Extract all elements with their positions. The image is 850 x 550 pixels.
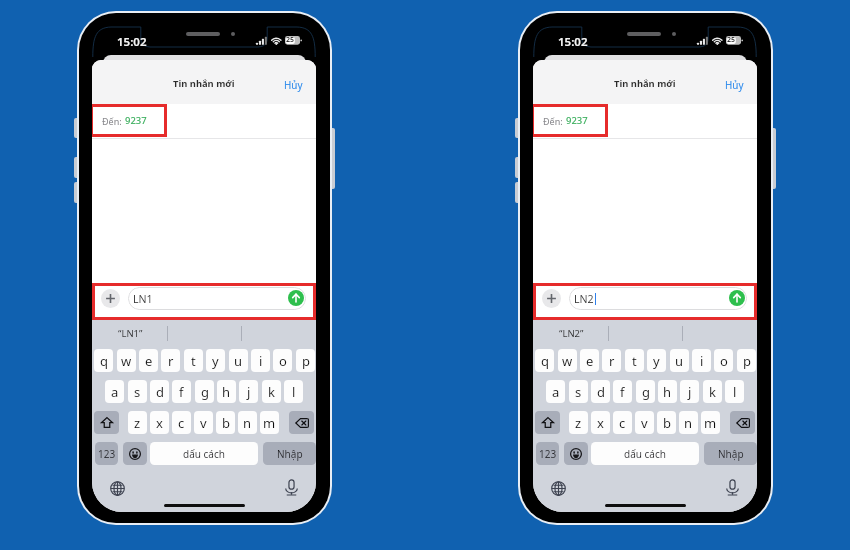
button[interactable]: h (217, 380, 236, 403)
button[interactable]: Shift (535, 411, 560, 434)
button[interactable]: LN2 (569, 287, 747, 310)
button[interactable]: b (657, 411, 676, 434)
button[interactable]: f (172, 380, 191, 403)
button[interactable]: w (117, 349, 136, 372)
staticText: c (178, 414, 185, 432)
button[interactable]: a (105, 380, 124, 403)
staticText: o (279, 352, 287, 370)
button[interactable]: Switch keyboard (110, 481, 125, 496)
button[interactable]: Nhập (263, 442, 316, 465)
button[interactable]: z (128, 411, 147, 434)
button[interactable]: Đến: (92, 104, 316, 139)
button[interactable]: Dictation (724, 479, 741, 496)
button[interactable]: s (569, 380, 588, 403)
button[interactable]: k (262, 380, 281, 403)
button[interactable]: a (546, 380, 565, 403)
button[interactable]: q (94, 349, 113, 372)
button[interactable]: g (195, 380, 214, 403)
staticText: h (222, 383, 231, 401)
button[interactable]: Send (729, 290, 745, 306)
staticText: m (704, 414, 717, 432)
button[interactable]: l (284, 380, 303, 403)
staticText: dấu cách (183, 447, 225, 461)
staticText: o (720, 352, 728, 370)
button[interactable]: y (647, 349, 666, 372)
button[interactable]: u (229, 349, 248, 372)
button[interactable]: i (251, 349, 270, 372)
staticText: “LN1” (118, 327, 143, 340)
button[interactable]: 123 (95, 442, 118, 465)
button[interactable]: f (613, 380, 632, 403)
button[interactable]: c (613, 411, 632, 434)
button[interactable]: dấu cách (591, 442, 699, 465)
button[interactable]: Add attachment (542, 289, 561, 308)
button[interactable]: e (139, 349, 158, 372)
button[interactable]: n (238, 411, 257, 434)
button[interactable]: i (692, 349, 711, 372)
button[interactable]: Backspace (289, 411, 314, 434)
button[interactable]: k (703, 380, 722, 403)
staticText: Tin nhắn mới (173, 77, 235, 90)
button[interactable]: j (239, 380, 258, 403)
button[interactable]: j (680, 380, 699, 403)
button[interactable]: b (216, 411, 235, 434)
button[interactable]: Nhập (704, 442, 757, 465)
button[interactable]: e (580, 349, 599, 372)
button[interactable]: d (591, 380, 610, 403)
button[interactable]: Backspace (730, 411, 755, 434)
button[interactable]: dấu cách (150, 442, 258, 465)
button[interactable]: r (602, 349, 621, 372)
staticText: 9237 (125, 114, 147, 127)
staticText: r (168, 352, 174, 370)
button[interactable]: p (737, 349, 756, 372)
button[interactable]: z (569, 411, 588, 434)
button[interactable]: v (194, 411, 213, 434)
button[interactable]: y (206, 349, 225, 372)
button[interactable]: x (150, 411, 169, 434)
staticText: w (562, 352, 573, 370)
staticText: c (619, 414, 626, 432)
button[interactable]: o (273, 349, 292, 372)
button[interactable]: o (714, 349, 733, 372)
staticText: n (243, 414, 252, 432)
button[interactable]: n (679, 411, 698, 434)
button[interactable]: Emoji (123, 442, 147, 465)
button[interactable]: Add attachment (101, 289, 120, 308)
button[interactable]: Hủy (725, 78, 744, 91)
button[interactable]: LN1 (128, 287, 306, 310)
button[interactable]: u (670, 349, 689, 372)
button[interactable]: g (636, 380, 655, 403)
button[interactable]: t (625, 349, 644, 372)
button[interactable]: q (535, 349, 554, 372)
staticText: 15:02 (558, 34, 588, 50)
button[interactable]: t (184, 349, 203, 372)
button[interactable]: Send (288, 290, 304, 306)
button[interactable]: c (172, 411, 191, 434)
button[interactable]: 123 (536, 442, 559, 465)
button[interactable]: Emoji (564, 442, 588, 465)
button[interactable]: Hủy (284, 78, 303, 91)
button[interactable]: d (150, 380, 169, 403)
staticText: t (191, 352, 196, 370)
staticText: v (200, 414, 207, 432)
button[interactable]: h (658, 380, 677, 403)
staticText: y (212, 352, 219, 370)
button[interactable]: Dictation (283, 479, 300, 496)
button[interactable]: x (591, 411, 610, 434)
staticText: l (733, 383, 737, 401)
button[interactable]: Switch keyboard (551, 481, 566, 496)
button[interactable]: l (725, 380, 744, 403)
staticText: e (586, 352, 594, 370)
staticText: 25 (286, 35, 295, 45)
button[interactable]: s (128, 380, 147, 403)
button[interactable]: w (558, 349, 577, 372)
staticText: LN1 (133, 292, 153, 306)
button[interactable]: m (701, 411, 720, 434)
button[interactable]: m (260, 411, 279, 434)
button[interactable]: Đến: (533, 104, 757, 139)
button[interactable]: r (161, 349, 180, 372)
button[interactable]: Shift (94, 411, 119, 434)
button[interactable]: p (296, 349, 315, 372)
staticText: x (597, 414, 604, 432)
button[interactable]: v (635, 411, 654, 434)
